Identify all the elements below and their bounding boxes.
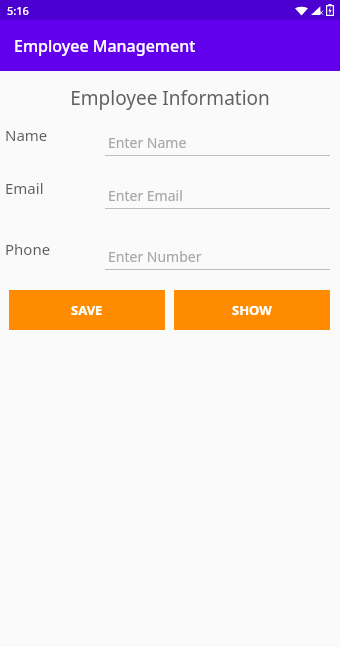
staticText: SAVE [71,301,103,319]
staticText: 5:16 [7,3,29,18]
button[interactable]: SAVE [9,290,165,330]
staticText: SHOW [232,301,272,319]
staticText: Phone [5,239,51,259]
staticText: Employee Information [0,85,340,111]
staticText: Email [5,178,44,198]
staticText: Name [5,125,48,145]
button[interactable]: Enter Name [105,125,330,156]
staticText: Employee Management [14,35,196,57]
staticText: Enter Email [108,186,183,205]
staticText: Enter Name [108,133,187,152]
button[interactable]: Enter Number [105,239,330,270]
button[interactable]: SHOW [174,290,330,330]
button[interactable]: Enter Email [105,178,330,209]
staticText: Enter Number [108,247,202,266]
